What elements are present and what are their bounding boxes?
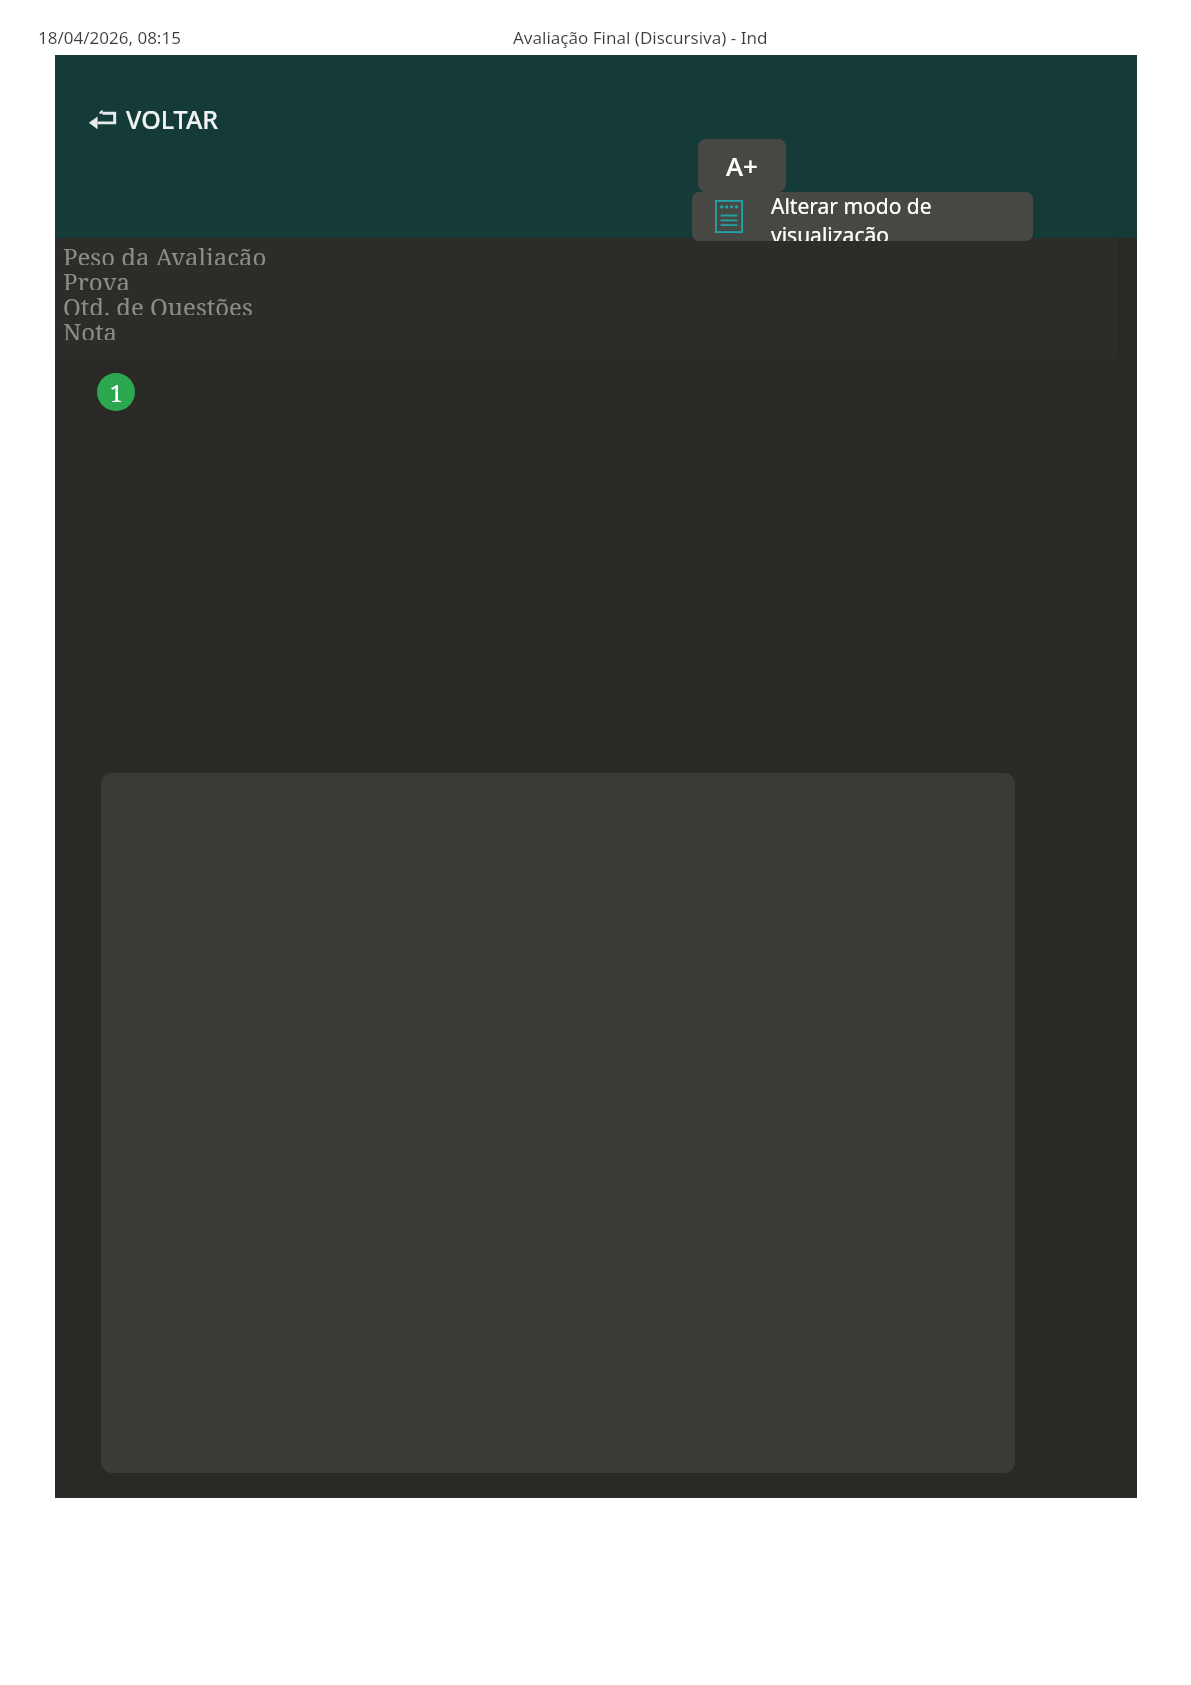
staticText: 18/04/2026, 08:15 — [38, 26, 181, 49]
staticText: Peso da Avaliação — [63, 240, 267, 265]
staticText: Avaliação Final (Discursiva) - Ind — [513, 26, 768, 49]
button[interactable]: Alterar modo de visualização — [692, 192, 1033, 241]
button[interactable]: Voltar — [83, 97, 223, 141]
other: Voltar — [87, 109, 118, 130]
button[interactable]: A+ — [698, 139, 786, 192]
staticText: A+ — [726, 148, 758, 183]
other: Alterar modo de visualização — [715, 200, 743, 233]
staticText: Nota — [63, 315, 118, 340]
staticText: Prova — [63, 265, 131, 290]
staticText: 1 — [110, 377, 123, 408]
staticText: Qtd. de Questões — [63, 290, 253, 315]
staticText: VOLTAR — [126, 102, 219, 136]
staticText: Alterar modo de visualização — [771, 192, 1033, 241]
button[interactable]: 1 — [97, 373, 135, 411]
